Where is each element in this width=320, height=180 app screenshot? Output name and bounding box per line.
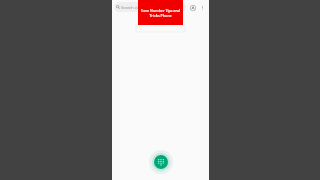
button[interactable]: Save Number Tips and Tricks Phone [138, 0, 183, 25]
staticText: Search contacts [121, 5, 151, 10]
button[interactable]: Open dialpad [154, 155, 168, 169]
button[interactable]: Search contacts [114, 2, 186, 12]
button[interactable]: More options [198, 3, 207, 12]
button[interactable]: Account [188, 3, 197, 12]
staticText: Save Number Tips and Tricks Phone [140, 8, 181, 18]
